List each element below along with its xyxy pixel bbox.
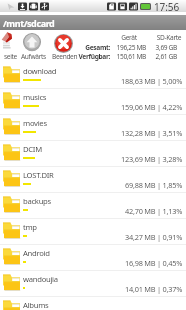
staticText: Gerät bbox=[112, 33, 146, 42]
button[interactable]: Beenden bbox=[51, 30, 78, 58]
staticText: Gesamt: bbox=[60, 43, 110, 52]
staticText: 42,70 MB | 1,13% bbox=[125, 206, 183, 216]
button[interactable]: LOST.DIR bbox=[0, 167, 186, 192]
staticText: Verfügbar: bbox=[60, 52, 110, 61]
staticText: Aufwärts bbox=[21, 52, 46, 61]
staticText: SD-Karte bbox=[150, 33, 186, 42]
staticText: 159,06 MB | 4,22% bbox=[121, 102, 183, 112]
button[interactable]: download bbox=[0, 63, 186, 88]
staticText: Beenden bbox=[52, 52, 78, 61]
staticText: 188,63 MB | 5,00% bbox=[121, 76, 183, 86]
staticText: backups bbox=[23, 196, 51, 206]
button[interactable]: backups bbox=[0, 193, 186, 218]
button[interactable]: Albums bbox=[0, 297, 186, 310]
staticText: 69,88 MB | 1,85% bbox=[125, 180, 183, 190]
button[interactable]: Startseite bbox=[0, 30, 14, 58]
staticText: 14,01 MB | 0,37% bbox=[125, 284, 183, 294]
staticText: musics bbox=[23, 92, 47, 102]
button[interactable]: wandoujia bbox=[0, 271, 186, 296]
button[interactable]: tmp bbox=[0, 219, 186, 244]
button[interactable]: Android bbox=[0, 245, 186, 270]
staticText: 34,27 MB | 0,91% bbox=[125, 232, 183, 242]
staticText: movies bbox=[23, 118, 47, 128]
staticText: download bbox=[23, 66, 57, 76]
staticText: tmp bbox=[23, 222, 37, 232]
staticText: 2,61 GB bbox=[148, 52, 177, 61]
staticText: 16,98 MB | 0,45% bbox=[125, 258, 183, 268]
staticText: wandoujia bbox=[23, 274, 58, 284]
staticText: 196,25 MB bbox=[110, 43, 146, 52]
staticText: Albums bbox=[23, 300, 49, 310]
staticText: seite bbox=[4, 52, 17, 61]
staticText: 150,61 MB bbox=[110, 52, 146, 61]
staticText: 3,69 GB bbox=[148, 43, 177, 52]
staticText: 132,28 MB | 3,51% bbox=[121, 128, 183, 138]
staticText: 17:56 bbox=[154, 0, 180, 12]
staticText: LOST.DIR bbox=[23, 170, 54, 180]
button[interactable]: Aufwärts bbox=[20, 30, 47, 58]
staticText: DCIM bbox=[23, 144, 42, 154]
button[interactable]: DCIM bbox=[0, 141, 186, 166]
staticText: 123,69 MB | 3,28% bbox=[121, 154, 183, 164]
button[interactable]: musics bbox=[0, 89, 186, 114]
staticText: Android bbox=[23, 248, 50, 258]
staticText: /mnt/sdcard bbox=[3, 17, 55, 29]
button[interactable]: movies bbox=[0, 115, 186, 140]
